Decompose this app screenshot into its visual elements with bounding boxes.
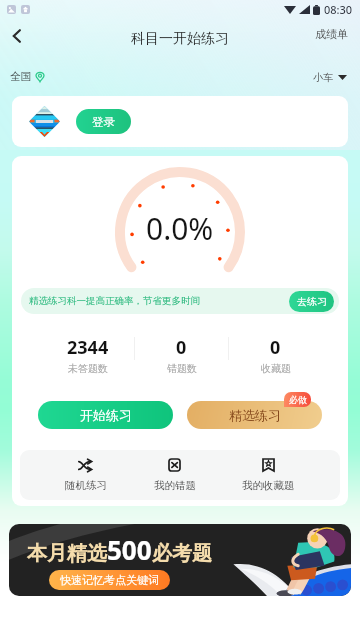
button[interactable]: 0: [135, 335, 228, 375]
staticText: 开始练习: [80, 407, 132, 423]
staticText: 0.0%: [146, 208, 214, 249]
staticText: 成绩单: [315, 27, 348, 41]
staticText: 去练习: [297, 295, 327, 308]
button[interactable]: 去练习: [289, 291, 334, 312]
staticText: 2344: [67, 335, 109, 360]
staticText: 500: [107, 532, 152, 567]
button[interactable]: 开始练习: [38, 401, 173, 429]
staticText: 精选练习科一提高正确率，节省更多时间: [29, 295, 200, 307]
staticText: 错题数: [167, 362, 197, 375]
button[interactable]: Back: [1, 20, 33, 52]
button[interactable]: 成绩单: [303, 19, 360, 49]
staticText: 全国: [10, 70, 31, 83]
button[interactable]: 小车: [305, 67, 360, 88]
staticText: 0: [176, 335, 187, 360]
button[interactable]: 本月精选: [9, 524, 351, 596]
button[interactable]: 我的错题: [129, 450, 220, 500]
staticText: 登录: [92, 115, 115, 129]
staticText: 必做: [289, 394, 307, 405]
staticText: 08:30: [324, 2, 353, 17]
button[interactable]: 登录: [76, 109, 131, 134]
staticText: 精选练习: [229, 407, 281, 423]
staticText: 0: [270, 335, 281, 360]
button[interactable]: 随机练习: [42, 450, 129, 500]
button[interactable]: 精选练习: [187, 401, 322, 429]
staticText: 随机练习: [65, 479, 107, 492]
button[interactable]: 我的收藏题: [220, 450, 316, 500]
staticText: 未答题数: [68, 362, 108, 375]
staticText: 我的收藏题: [242, 479, 295, 492]
button[interactable]: 精选练习科一提高正确率，节省更多时间: [21, 288, 339, 314]
button[interactable]: 0: [229, 335, 322, 375]
staticText: 必考题: [152, 541, 212, 566]
staticText: 科目一开始练习: [131, 30, 229, 48]
staticText: 快速记忆考点关键词: [60, 573, 159, 587]
button[interactable]: 2344: [42, 335, 134, 375]
staticText: 我的错题: [154, 479, 196, 492]
staticText: 小车: [313, 71, 333, 84]
button[interactable]: 全国: [0, 66, 53, 87]
staticText: 收藏题: [261, 362, 291, 375]
staticText: 本月精选: [27, 541, 107, 566]
